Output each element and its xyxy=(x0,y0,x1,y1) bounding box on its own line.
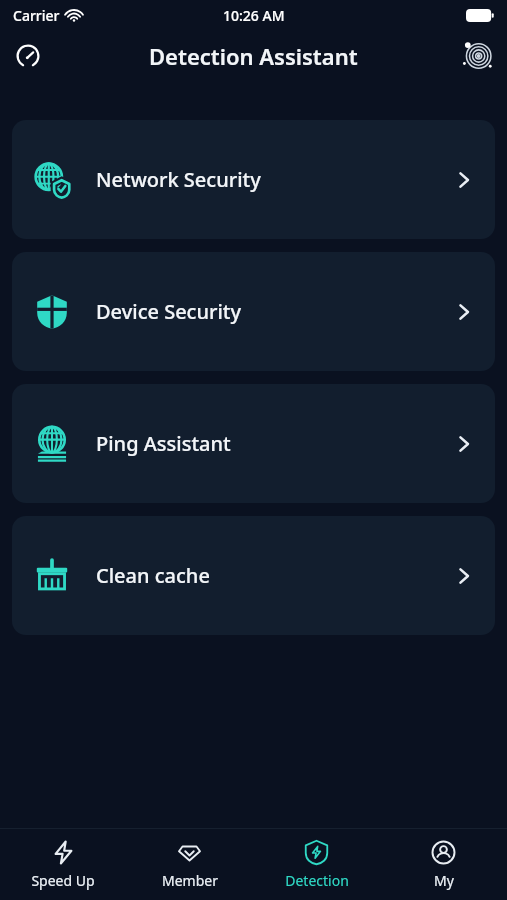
staticText: 10:26 AM xyxy=(223,6,285,25)
staticText: Network Security xyxy=(96,166,261,193)
button[interactable]: Detection xyxy=(253,833,380,896)
staticText: My xyxy=(434,871,454,890)
other: Member xyxy=(177,840,202,865)
button[interactable]: Clean cache xyxy=(12,516,495,635)
other: My xyxy=(431,840,456,865)
staticText: Detection xyxy=(285,871,349,890)
button[interactable]: Network Security xyxy=(12,120,495,239)
staticText: Carrier xyxy=(13,6,60,25)
staticText: Ping Assistant xyxy=(96,430,231,457)
staticText: Clean cache xyxy=(96,562,210,589)
staticText: Device Security xyxy=(96,298,242,325)
other: Detection xyxy=(304,840,329,865)
button[interactable]: Speed test xyxy=(6,34,50,78)
staticText: Detection Assistant xyxy=(149,41,358,71)
staticText: Speed Up xyxy=(31,871,95,890)
button[interactable]: Member xyxy=(126,833,253,896)
other: Speed Up xyxy=(51,840,76,865)
button[interactable]: Speed Up xyxy=(0,833,126,896)
button[interactable]: Device Security xyxy=(12,252,495,371)
button[interactable]: My xyxy=(380,833,507,896)
staticText: Member xyxy=(162,871,218,890)
button[interactable]: Ping Assistant xyxy=(12,384,495,503)
button[interactable]: Radar scan xyxy=(455,33,501,79)
